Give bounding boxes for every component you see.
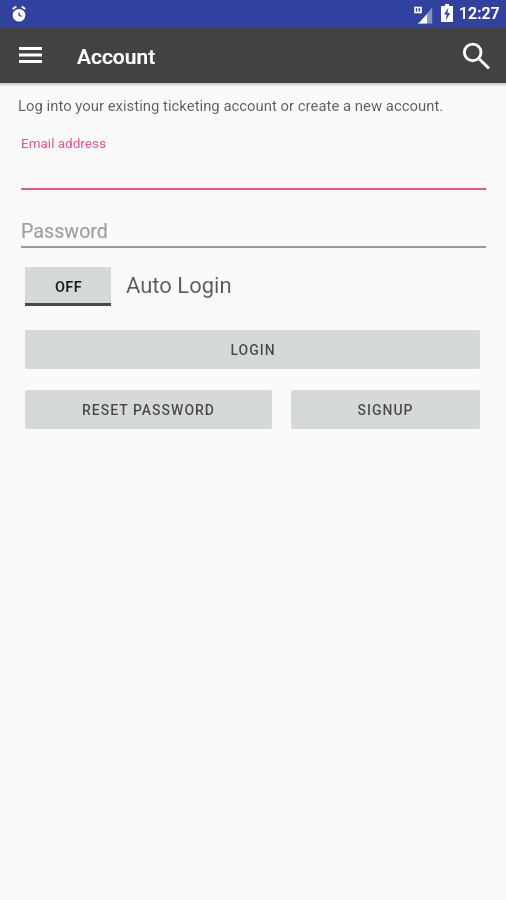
button[interactable]: SIGNUP [291,390,480,429]
staticText: 12:27 [459,4,500,23]
staticText: Password [21,220,108,243]
button[interactable]: Open navigation menu [0,27,60,83]
staticText: Email address [21,135,106,151]
button[interactable]: RESET PASSWORD [25,390,272,429]
button[interactable]: LOGIN [25,330,480,369]
staticText: Log into your existing ticketing account… [18,97,444,114]
staticText: SIGNUP [357,402,414,418]
staticText: OFF [55,279,82,296]
staticText: RESET PASSWORD [82,402,215,418]
button[interactable]: Search [448,27,506,83]
staticText: LOGIN [230,342,276,358]
staticText: Auto Login [126,273,232,299]
staticText: Account [77,45,156,70]
button[interactable]: OFF [25,267,111,306]
